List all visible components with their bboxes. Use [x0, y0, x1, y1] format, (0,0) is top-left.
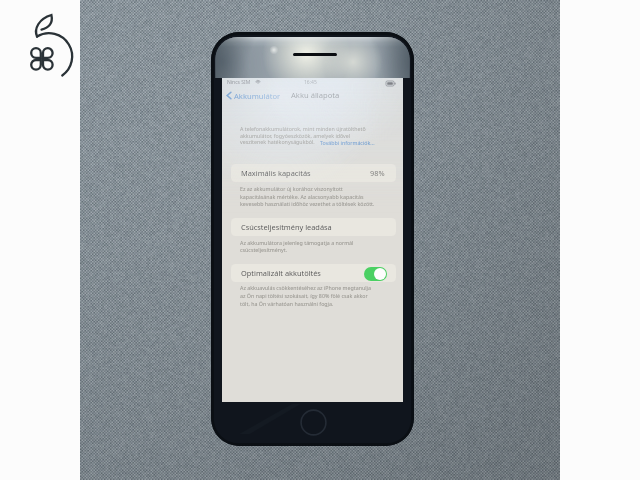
staticText: akkumulátor, fogyóeszközök, amelyek időv… — [240, 132, 351, 139]
staticText: Optimalizált akkutöltés — [241, 268, 321, 278]
staticText: Csúcsteljesítmény leadása — [241, 222, 332, 232]
staticText: 16:45 — [304, 79, 317, 86]
staticText: veszítenek hatékonyságukból. — [240, 138, 315, 145]
staticText: Ez az akkumulátor új korához viszonyítot… — [240, 185, 343, 192]
staticText: Akku állapota — [291, 90, 340, 100]
staticText: kapacitásának mértéke. Az alacsonyabb ka… — [240, 193, 364, 200]
staticText: A telefonakkumulátorok, mint minden újra… — [240, 125, 366, 132]
staticText: Maximális kapacitás — [241, 168, 311, 178]
staticText: az Ön napi töltési szokásait, így 80% fö… — [240, 292, 368, 299]
button[interactable]: További információk... — [320, 139, 375, 146]
button[interactable]: Akkumulátor — [226, 88, 281, 103]
button[interactable]: Optimalizált akkutöltés — [231, 264, 396, 282]
staticText: 98% — [370, 168, 385, 178]
staticText: Akkumulátor — [234, 91, 281, 101]
staticText: kevesebb használati időhöz vezethet a tö… — [240, 200, 375, 207]
staticText: Az akkuavulás csökkentéséhez az iPhone m… — [240, 284, 371, 291]
button[interactable]: Csúcsteljesítmény leadása — [231, 218, 396, 236]
other: Home — [300, 409, 327, 436]
button[interactable]: Maximális kapacitás — [231, 164, 396, 182]
staticText: tölt, ha Ön várhatóan használni fogja. — [240, 300, 334, 307]
staticText: Az akkumulátora jelenleg támogatja a nor… — [240, 239, 354, 246]
staticText: csúcsteljesítményt. — [240, 246, 288, 253]
staticText: További információk... — [320, 139, 375, 146]
other: Logo — [29, 13, 73, 77]
staticText: Nincs SIM — [227, 79, 251, 86]
button[interactable]: Optimalizált akkutöltés kapcsoló — [364, 267, 387, 281]
